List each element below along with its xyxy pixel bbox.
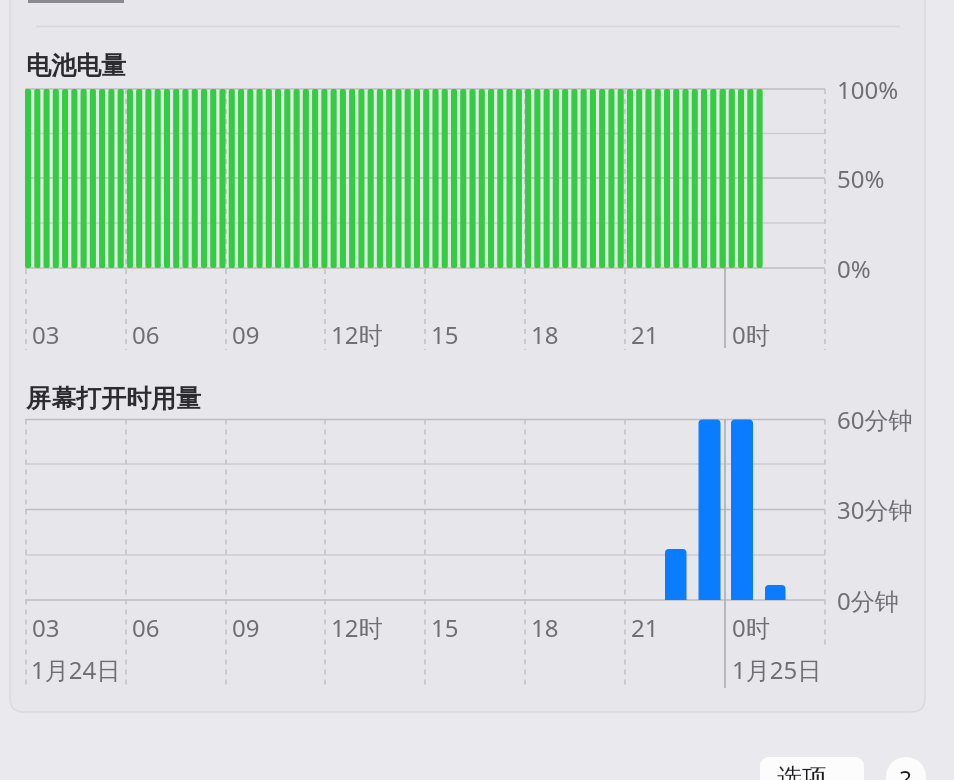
button[interactable]: 帮助 (886, 757, 926, 780)
button[interactable] (760, 757, 864, 780)
